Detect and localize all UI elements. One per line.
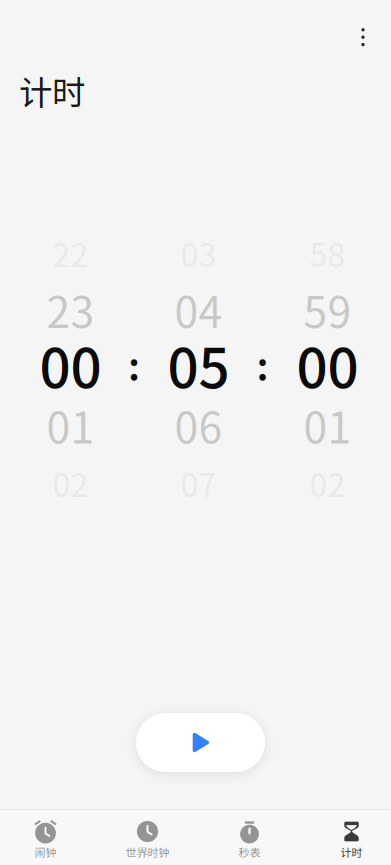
button[interactable]: 计时 [303, 810, 391, 865]
staticText: 计时 [19, 66, 85, 115]
staticText: : [256, 335, 268, 391]
staticText: 02 [309, 460, 345, 506]
staticText: 01 [46, 394, 94, 456]
staticText: 世界时钟 [125, 844, 169, 860]
staticText: 00 [39, 325, 101, 405]
staticText: 02 [52, 460, 88, 506]
staticText: 秒表 [238, 844, 260, 860]
button[interactable]: 世界时钟 [99, 810, 195, 865]
staticText: 计时 [340, 844, 362, 860]
staticText: 闹钟 [34, 844, 56, 860]
staticText: 01 [303, 394, 351, 456]
staticText: 03 [180, 230, 216, 276]
staticText: 22 [52, 230, 88, 276]
staticText: 59 [303, 279, 351, 340]
button[interactable]: Start timer [136, 713, 265, 772]
staticText: 04 [174, 279, 222, 340]
staticText: 23 [46, 279, 94, 340]
staticText: 05 [167, 325, 229, 405]
button[interactable]: 秒表 [201, 810, 297, 865]
staticText: 00 [296, 325, 358, 405]
button[interactable]: More options [340, 14, 386, 60]
staticText: : [128, 335, 140, 391]
staticText: 58 [309, 230, 345, 276]
staticText: 06 [174, 394, 222, 456]
staticText: 07 [180, 460, 216, 506]
button[interactable]: 闹钟 [0, 810, 93, 865]
